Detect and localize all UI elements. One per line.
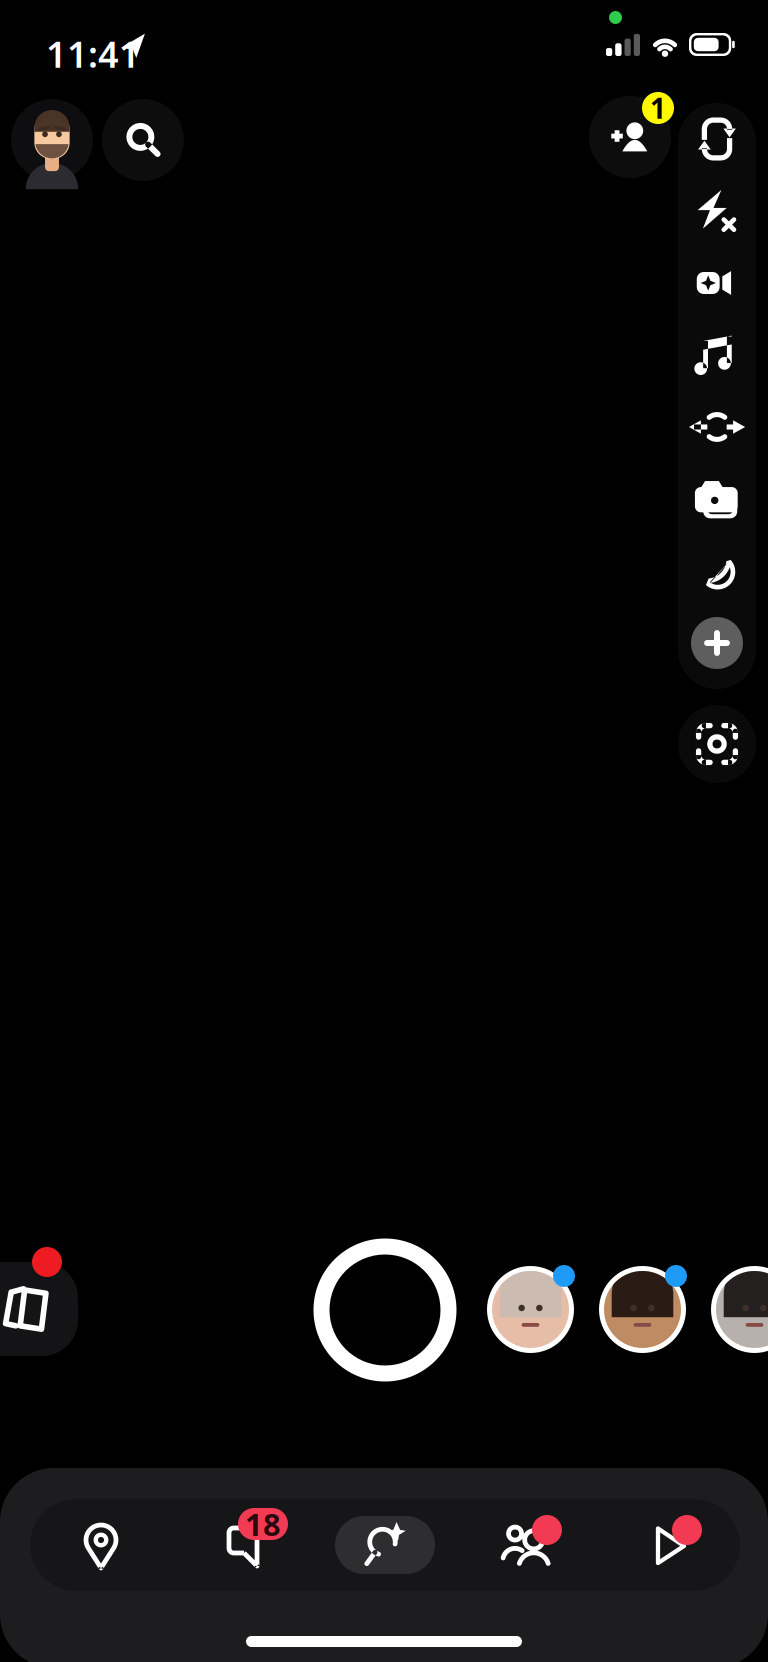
button[interactable]: Friends xyxy=(456,1499,598,1591)
staticText: 1 xyxy=(650,89,666,127)
button[interactable]: Flash off xyxy=(679,175,755,247)
button[interactable]: More lenses xyxy=(679,607,755,679)
button[interactable]: Flip camera xyxy=(679,103,755,175)
button[interactable]: Map xyxy=(30,1499,172,1591)
button[interactable]: Camera xyxy=(314,1499,456,1591)
button[interactable]: Music xyxy=(679,319,755,391)
button[interactable]: Chat, 18 unread xyxy=(172,1499,314,1591)
button[interactable]: Friend story xyxy=(599,1266,686,1353)
button[interactable]: Friend story xyxy=(711,1266,768,1353)
button[interactable]: Spotlight xyxy=(598,1499,740,1591)
staticText: 11:41 xyxy=(46,30,140,78)
button[interactable]: Night mode xyxy=(679,535,755,607)
button[interactable]: Multi snap xyxy=(679,463,755,535)
button[interactable]: Timer xyxy=(679,391,755,463)
button[interactable]: Add friends xyxy=(589,96,671,178)
button[interactable]: Scan xyxy=(678,705,756,783)
button[interactable]: Take snap xyxy=(312,1237,458,1383)
button[interactable]: Friend story xyxy=(487,1266,574,1353)
button[interactable]: Profile xyxy=(11,99,93,181)
button[interactable]: Search xyxy=(102,99,184,181)
staticText: 18 xyxy=(245,1504,281,1544)
button[interactable]: Memories xyxy=(0,1262,78,1356)
button[interactable]: Video xyxy=(679,247,755,319)
